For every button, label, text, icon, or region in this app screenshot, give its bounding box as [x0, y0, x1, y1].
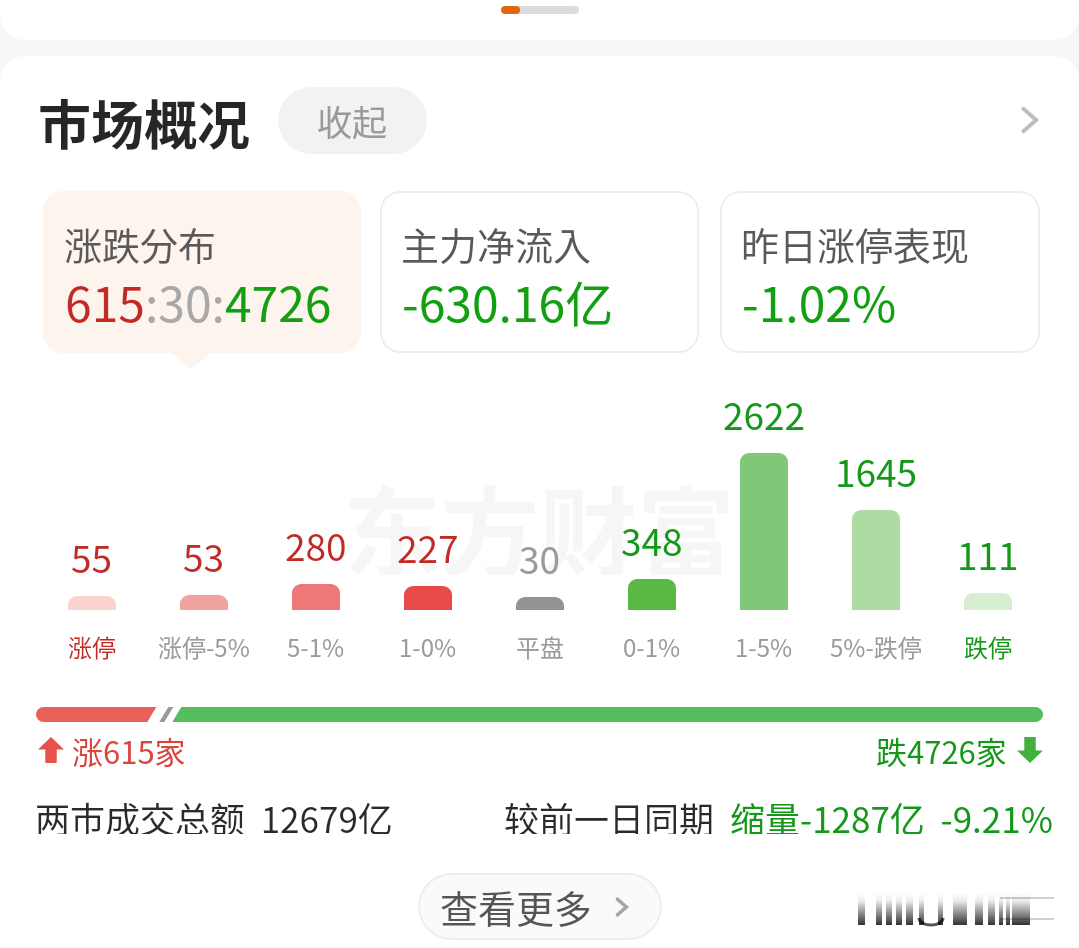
- staticText: 涨停-5%: [158, 629, 250, 661]
- staticText: 348: [621, 513, 683, 563]
- staticText: 两市成交总额 12679亿: [35, 792, 393, 834]
- button[interactable]: 涨跌分布: [43, 191, 361, 353]
- staticText: 东方财富: [343, 455, 736, 575]
- staticText: 主力净流入: [401, 216, 592, 271]
- staticText: 平盘: [516, 629, 564, 661]
- staticText: 1645: [835, 444, 918, 494]
- staticText: 111: [957, 527, 1019, 577]
- staticText: 5%-跌停: [830, 629, 922, 661]
- staticText: 1-0%: [399, 629, 457, 661]
- staticText: 227: [397, 520, 459, 570]
- staticText: -630.16亿: [402, 266, 614, 336]
- staticText: 5-1%: [287, 629, 345, 661]
- staticText: 市场概况: [38, 84, 250, 156]
- button[interactable]: 昨日涨停表现: [720, 191, 1040, 353]
- staticText: -1.02%: [742, 266, 897, 336]
- staticText: 跌4726家: [876, 728, 1007, 773]
- staticText: 昨日涨停表现: [741, 216, 970, 271]
- staticText: 280: [285, 518, 347, 568]
- button[interactable]: 查看更多: [418, 873, 662, 940]
- button[interactable]: 收起: [278, 87, 427, 154]
- staticText: 55: [71, 530, 113, 580]
- staticText: 涨跌分布: [64, 216, 217, 271]
- staticText: 2622: [723, 387, 806, 437]
- staticText: 涨615家: [72, 728, 186, 773]
- staticText: 缩量-1287亿 -9.21%: [730, 792, 1053, 834]
- staticText: 615:30:4726: [65, 266, 332, 336]
- staticText: 收起: [317, 95, 388, 146]
- staticText: 较前一日同期: [504, 792, 730, 834]
- button[interactable]: More: [1001, 92, 1057, 148]
- button[interactable]: 主力净流入: [380, 191, 699, 353]
- staticText: 0-1%: [623, 629, 681, 661]
- staticText: 跌停: [964, 629, 1012, 661]
- staticText: 1-5%: [735, 629, 793, 661]
- staticText: 53: [183, 529, 225, 579]
- staticText: 涨停: [68, 629, 116, 661]
- staticText: 查看更多: [440, 879, 593, 934]
- staticText: 30: [519, 531, 561, 581]
